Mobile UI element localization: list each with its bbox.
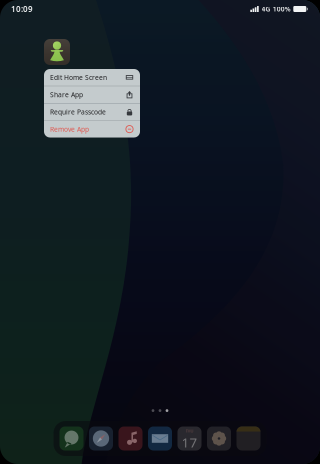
staticText: 4G	[261, 5, 270, 13]
staticText: THU	[185, 428, 193, 433]
staticText: 100%	[273, 5, 291, 13]
button[interactable]: Remove App	[44, 121, 140, 138]
staticText: 17	[181, 434, 197, 451]
staticText: Edit Home Screen	[50, 73, 107, 82]
button[interactable]: Edit Home Screen	[44, 69, 140, 86]
staticText: Remove App	[50, 125, 89, 134]
button[interactable]: Share App	[44, 86, 140, 103]
staticText: 10:09	[11, 4, 33, 14]
staticText: Require Passcode	[50, 107, 106, 116]
staticText: Share App	[50, 90, 83, 99]
button[interactable]: Require Passcode	[44, 103, 140, 120]
